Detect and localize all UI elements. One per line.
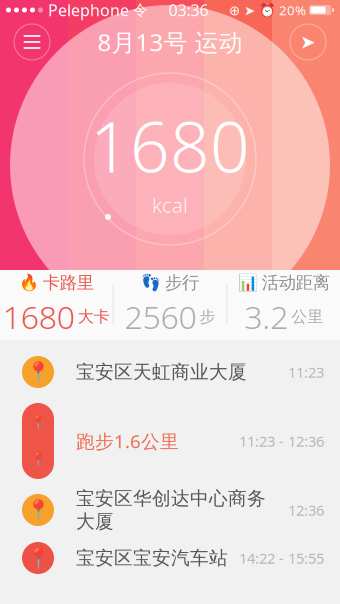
staticText: 步行 — [165, 272, 199, 293]
staticText: 11:23 - 12:36 — [239, 431, 324, 451]
staticText: 活动距离 — [262, 272, 330, 293]
staticText: 令 — [133, 1, 148, 19]
staticText: 📍 — [29, 452, 46, 467]
staticText: 卡路里 — [43, 272, 94, 293]
staticText: 3.2 — [244, 295, 288, 338]
staticText: kcal — [152, 192, 188, 218]
staticText: 大卡 — [78, 307, 110, 326]
staticText: 📍 — [25, 547, 50, 569]
button[interactable]: 📍 — [0, 486, 340, 534]
staticText: 12:36 — [288, 500, 324, 520]
staticText: 📍 — [25, 499, 50, 521]
button[interactable]: Share — [290, 24, 326, 60]
staticText: ⊕ ➤ ⏰ 20% — [229, 1, 306, 19]
staticText: 1680 — [3, 295, 75, 338]
staticText: 📊 — [238, 274, 258, 292]
button[interactable]: 📍 — [0, 396, 340, 486]
staticText: 1680 — [90, 100, 250, 192]
staticText: 🔥 — [19, 274, 39, 292]
staticText: 03:36 — [168, 0, 208, 21]
staticText: 公里 — [291, 307, 323, 326]
staticText: 2560 — [124, 295, 196, 338]
button[interactable]: Menu — [14, 24, 50, 60]
button[interactable]: 📍 — [0, 534, 340, 582]
staticText: 8月13号 运动 — [97, 26, 242, 58]
staticText: 11:23 — [288, 362, 324, 382]
staticText: Pelephone — [48, 0, 129, 21]
staticText: 📍 — [25, 361, 50, 383]
staticText: 📍 — [29, 415, 46, 430]
staticText: ➤ — [300, 31, 316, 53]
staticText: 宝安区宝安汽车站 — [76, 546, 228, 569]
staticText: 步 — [199, 307, 215, 326]
staticText: 👣 — [141, 274, 161, 292]
staticText: 14:22 - 15:55 — [239, 548, 324, 568]
staticText: 宝安区华创达中心商务大厦 — [76, 487, 266, 533]
button[interactable]: 📍 — [0, 348, 340, 396]
staticText: 跑步1.6公里 — [76, 429, 179, 453]
staticText: 宝安区天虹商业大厦 — [76, 360, 247, 383]
